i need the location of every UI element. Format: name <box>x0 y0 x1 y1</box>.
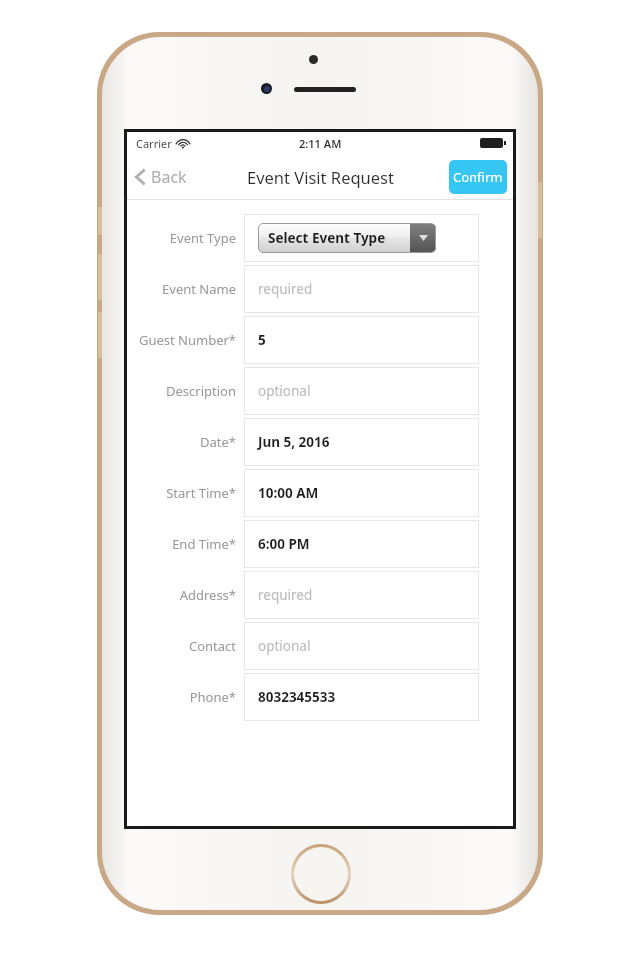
button[interactable]: Guest Number* <box>127 314 513 365</box>
staticText: Event Visit Request <box>247 166 394 188</box>
button[interactable]: Confirm <box>449 160 507 194</box>
staticText: 2:11 AM <box>299 136 342 151</box>
staticText: Address* <box>179 586 236 604</box>
button[interactable]: Contact <box>127 620 513 671</box>
button[interactable]: Select Event Type <box>258 223 436 253</box>
button[interactable]: Event Name <box>127 263 513 314</box>
staticText: Description <box>166 382 236 400</box>
button[interactable]: Back <box>127 160 197 194</box>
other: Open event type list <box>410 224 436 252</box>
button[interactable]: Start Time* <box>127 467 513 518</box>
staticText: Contact <box>188 637 236 655</box>
staticText: Guest Number* <box>138 331 236 349</box>
staticText: End Time* <box>172 535 236 553</box>
button[interactable]: Description <box>127 365 513 416</box>
staticText: optional <box>258 382 311 400</box>
staticText: Event Name <box>162 280 236 298</box>
button[interactable]: Date* <box>127 416 513 467</box>
staticText: required <box>258 586 313 604</box>
staticText: Start Time* <box>166 484 236 502</box>
staticText: Back <box>151 166 187 188</box>
staticText: required <box>258 280 313 298</box>
staticText: Event Type <box>169 229 236 247</box>
staticText: Confirm <box>453 168 503 186</box>
staticText: 6:00 PM <box>258 535 310 553</box>
staticText: 8032345533 <box>258 688 336 706</box>
staticText: 10:00 AM <box>258 484 319 502</box>
staticText: optional <box>258 637 311 655</box>
button[interactable]: Event Type <box>127 212 513 263</box>
button[interactable]: End Time* <box>127 518 513 569</box>
staticText: Jun 5, 2016 <box>258 433 330 451</box>
staticText: Date* <box>200 433 236 451</box>
staticText: Select Event Type <box>268 229 386 247</box>
staticText: Carrier <box>136 136 172 151</box>
button[interactable]: Phone* <box>127 671 513 722</box>
staticText: Phone* <box>189 688 236 706</box>
staticText: 5 <box>258 331 266 349</box>
button[interactable]: Address* <box>127 569 513 620</box>
